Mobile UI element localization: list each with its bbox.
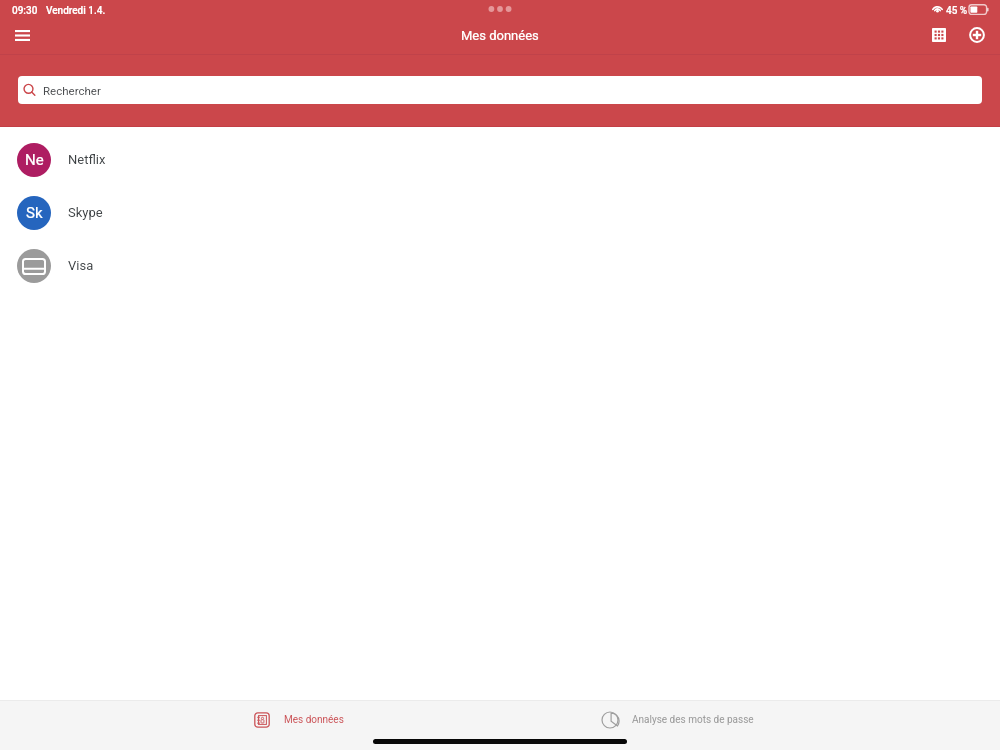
button[interactable]: Analyse des mots de passe — [594, 701, 764, 739]
staticText: Sk — [26, 204, 43, 222]
staticText: 09:30 — [12, 5, 38, 17]
button[interactable]: Visa — [0, 239, 1000, 292]
button[interactable]: Sk — [0, 186, 1000, 239]
staticText: Rechercher — [43, 84, 101, 97]
staticText: Mes données — [284, 714, 344, 726]
button[interactable]: Rechercher — [18, 76, 982, 104]
staticText: Vendredi 1.4. — [46, 5, 106, 17]
button[interactable]: Grid view — [920, 18, 958, 51]
staticText: Netflix — [68, 152, 106, 167]
button[interactable]: Mes données — [247, 701, 354, 739]
staticText: Ne — [25, 151, 44, 169]
staticText: Analyse des mots de passe — [632, 714, 754, 726]
button[interactable]: Add — [958, 18, 996, 51]
button[interactable]: Menu — [2, 19, 43, 52]
staticText: Mes données — [461, 28, 539, 43]
staticText: Skype — [68, 205, 103, 220]
staticText: 45 % — [946, 5, 968, 17]
button[interactable]: Ne — [0, 133, 1000, 186]
staticText: Visa — [68, 258, 94, 273]
